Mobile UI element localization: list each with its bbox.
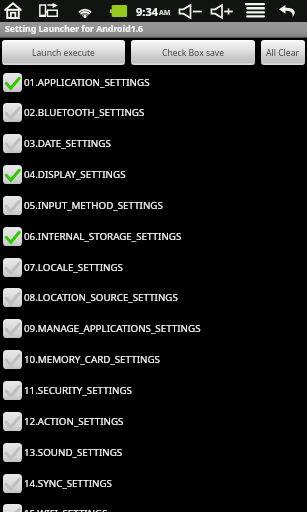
staticText: 05.INPUT_METHOD_SETTINGS — [24, 199, 163, 212]
button[interactable]: 13.SOUND_SETTINGS — [0, 437, 307, 468]
button[interactable]: 09.MANAGE_APPLICATIONS_SETTINGS — [0, 313, 307, 344]
staticText: 02.BLUETOOTH_SETTINGS — [24, 106, 145, 119]
staticText: 14.SYNC_SETTINGS — [24, 477, 112, 490]
button[interactable]: 06.INTERNAL_STORAGE_SETTINGS — [0, 221, 307, 252]
staticText: 07.LOCALE_SETTINGS — [24, 261, 123, 274]
button[interactable]: Check Box save — [131, 40, 255, 65]
other: Battery — [110, 5, 127, 17]
button[interactable]: 10.MEMORY_CARD_SETTINGS — [0, 344, 307, 375]
staticText: 03.DATE_SETTINGS — [24, 137, 111, 150]
other: Wi-Fi — [78, 3, 92, 18]
staticText: Setting Launcher for Android1.6 — [5, 23, 144, 35]
staticText: 11.SECURITY_SETTINGS — [24, 384, 132, 397]
other: Menu — [245, 3, 265, 19]
staticText: Launch execute — [32, 47, 95, 59]
staticText: 01.APPLICATION_SETTINGS — [24, 76, 150, 89]
other: USB transfer — [37, 4, 58, 17]
other: Home — [4, 2, 22, 19]
button[interactable]: 12.ACTION_SETTINGS — [0, 406, 307, 437]
staticText: 10.MEMORY_CARD_SETTINGS — [24, 353, 160, 366]
button[interactable]: 04.DISPLAY_SETTINGS — [0, 159, 307, 190]
button[interactable]: 08.LOCATION_SOURCE_SETTINGS — [0, 282, 307, 313]
button[interactable]: 03.DATE_SETTINGS — [0, 128, 307, 159]
staticText: All Clear — [266, 47, 300, 59]
staticText: 08.LOCATION_SOURCE_SETTINGS — [24, 291, 178, 304]
staticText: 13.SOUND_SETTINGS — [24, 446, 123, 459]
button[interactable]: 15.WIFI_SETTINGS — [0, 498, 307, 512]
button[interactable]: 01.APPLICATION_SETTINGS — [0, 67, 307, 98]
staticText: AM — [159, 8, 171, 18]
staticText: 09.MANAGE_APPLICATIONS_SETTINGS — [24, 322, 201, 335]
button[interactable]: 11.SECURITY_SETTINGS — [0, 375, 307, 406]
button[interactable]: 14.SYNC_SETTINGS — [0, 468, 307, 499]
staticText: 15.WIFI_SETTINGS — [24, 507, 108, 512]
staticText: Check Box save — [162, 47, 225, 59]
staticText: 06.INTERNAL_STORAGE_SETTINGS — [24, 230, 182, 243]
other: Back — [279, 5, 296, 17]
button[interactable]: 02.BLUETOOTH_SETTINGS — [0, 97, 307, 128]
other: Volume down — [179, 5, 202, 18]
button[interactable]: All Clear — [261, 40, 305, 65]
staticText: 04.DISPLAY_SETTINGS — [24, 168, 126, 181]
button[interactable]: 07.LOCALE_SETTINGS — [0, 252, 307, 283]
button[interactable]: Launch execute — [2, 40, 125, 65]
staticText: 9:34 — [136, 4, 158, 19]
button[interactable]: 05.INPUT_METHOD_SETTINGS — [0, 190, 307, 221]
staticText: 12.ACTION_SETTINGS — [24, 415, 124, 428]
other: Volume up — [211, 5, 233, 18]
